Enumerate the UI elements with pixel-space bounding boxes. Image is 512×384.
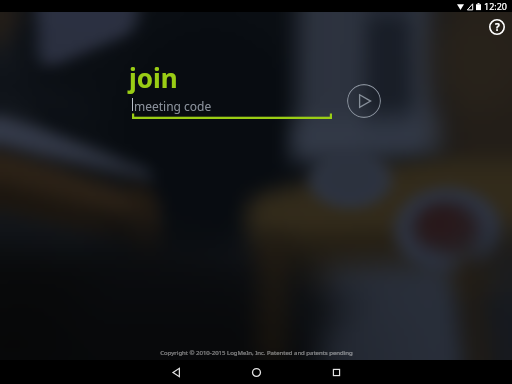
- staticText: ?: [495, 20, 500, 34]
- staticText: Copyright © 2010-2015 LogMeIn, Inc. Pate…: [160, 349, 353, 357]
- button[interactable]: Home: [236, 360, 276, 384]
- staticText: meeting code: [134, 98, 212, 114]
- button[interactable]: Recents: [316, 360, 356, 384]
- staticText: 12:20: [484, 0, 508, 12]
- button[interactable]: Help: [484, 14, 510, 40]
- button[interactable]: Join meeting: [347, 84, 381, 118]
- staticText: join: [129, 60, 178, 95]
- button[interactable]: Back: [156, 360, 196, 384]
